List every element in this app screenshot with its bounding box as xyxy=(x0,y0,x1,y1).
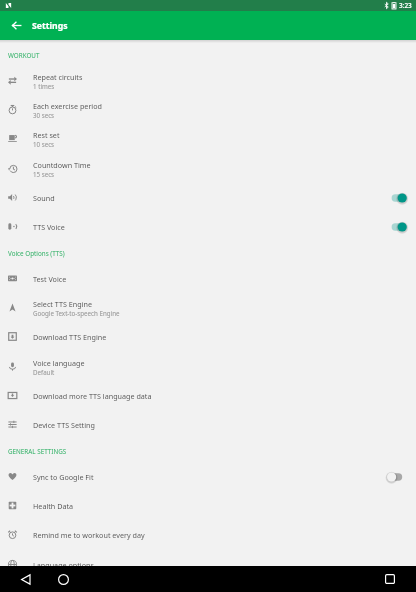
button[interactable]: Remind me to workout every day xyxy=(0,520,416,549)
button[interactable]: Test Voice xyxy=(0,264,416,293)
staticText: Remind me to workout every day xyxy=(33,530,145,540)
button[interactable]: Sound xyxy=(0,183,416,212)
staticText: Download more TTS language data xyxy=(33,391,152,401)
staticText: Repeat circuits xyxy=(33,72,83,82)
button[interactable]: Select TTS Engine xyxy=(0,293,416,322)
button[interactable]: Download more TTS language data xyxy=(0,381,416,410)
staticText: Rest set xyxy=(33,130,60,140)
staticText: Voice Options (TTS) xyxy=(8,249,65,258)
button[interactable]: Countdown Time xyxy=(0,154,416,183)
button[interactable]: Recents xyxy=(377,566,403,592)
staticText: Settings xyxy=(32,20,68,32)
staticText: Test Voice xyxy=(33,274,67,284)
button[interactable]: Health Data xyxy=(0,491,416,520)
button[interactable]: Language options xyxy=(0,550,416,579)
staticText: Google Text-to-speech Engine xyxy=(33,309,120,317)
staticText: Download TTS Engine xyxy=(33,332,107,342)
button[interactable]: Toggle xyxy=(387,187,416,209)
button[interactable]: Download TTS Engine xyxy=(0,322,416,351)
staticText: Default xyxy=(33,368,55,376)
staticText: 1 times xyxy=(33,82,55,90)
staticText: Sound xyxy=(33,193,55,203)
button[interactable]: Each exercise period xyxy=(0,95,416,124)
staticText: Select TTS Engine xyxy=(33,299,92,309)
button[interactable]: Rest set xyxy=(0,124,416,153)
button[interactable]: TTS Voice xyxy=(0,212,416,241)
staticText: 10 secs xyxy=(33,140,55,148)
button[interactable]: Repeat circuits xyxy=(0,66,416,95)
staticText: TTS Voice xyxy=(33,222,65,232)
staticText: Health Data xyxy=(33,501,74,511)
staticText: 3:23 xyxy=(399,1,412,10)
staticText: Voice language xyxy=(33,358,85,368)
staticText: Sync to Google Fit xyxy=(33,472,94,482)
staticText: Language options xyxy=(33,560,94,570)
button[interactable]: Toggle xyxy=(387,216,416,238)
button[interactable]: Sync to Google Fit xyxy=(0,462,416,491)
button[interactable]: Home xyxy=(50,566,76,592)
button[interactable]: Device TTS Setting xyxy=(0,410,416,439)
staticText: Each exercise period xyxy=(33,101,102,111)
staticText: Device TTS Setting xyxy=(33,420,95,430)
button[interactable]: Toggle xyxy=(387,466,416,488)
staticText: Countdown Time xyxy=(33,160,91,170)
staticText: 30 secs xyxy=(33,111,55,119)
staticText: GENERAL SETTINGS xyxy=(8,447,67,456)
button[interactable]: Back xyxy=(0,11,29,40)
staticText: WORKOUT xyxy=(8,51,40,60)
staticText: 15 secs xyxy=(33,170,55,178)
button[interactable]: Voice language xyxy=(0,352,416,381)
button[interactable]: Back xyxy=(13,566,39,592)
